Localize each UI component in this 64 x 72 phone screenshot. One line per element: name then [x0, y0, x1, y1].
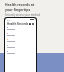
staticText: Health records at — [5, 2, 35, 7]
button[interactable] — [5, 26, 36, 32]
staticText: Securely access your medical — [5, 13, 41, 17]
button[interactable]: Search — [29, 23, 31, 25]
staticText: Health Records — [7, 22, 29, 26]
button[interactable] — [5, 38, 36, 44]
button[interactable] — [5, 50, 36, 56]
button[interactable] — [5, 32, 36, 38]
button[interactable] — [5, 44, 36, 50]
staticText: your fingertips — [5, 7, 31, 12]
staticText: 9:41 — [7, 19, 11, 21]
